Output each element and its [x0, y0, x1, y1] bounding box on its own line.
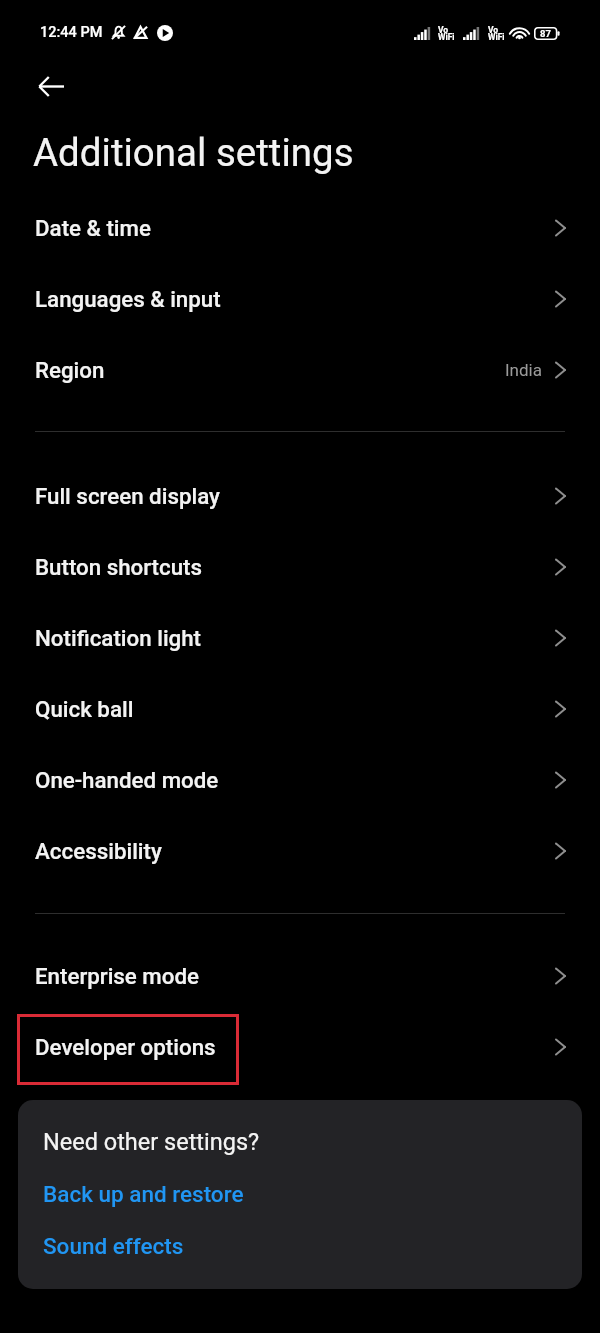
- staticText: Enterprise mode: [35, 963, 200, 989]
- staticText: Full screen display: [35, 483, 220, 509]
- staticText: Additional settings: [33, 130, 354, 175]
- staticText: Developer options: [35, 1034, 216, 1060]
- staticText: Vo: [488, 25, 499, 35]
- staticText: 12:44 PM: [40, 24, 103, 41]
- button[interactable]: Sound effects: [43, 1233, 184, 1259]
- staticText: Notification light: [35, 625, 202, 651]
- button[interactable]: Date & time: [0, 192, 600, 263]
- button[interactable]: One-handed mode: [0, 744, 600, 815]
- staticText: WiFi: [488, 32, 504, 42]
- staticText: WiFi: [438, 32, 454, 42]
- button[interactable]: Languages & input: [0, 263, 600, 334]
- button[interactable]: Enterprise mode: [0, 940, 600, 1011]
- button[interactable]: Developer options: [0, 1011, 600, 1082]
- staticText: Quick ball: [35, 696, 134, 722]
- button[interactable]: Button shortcuts: [0, 531, 600, 602]
- staticText: Button shortcuts: [35, 554, 203, 580]
- button[interactable]: Region: [0, 334, 600, 405]
- staticText: India: [505, 360, 542, 380]
- button[interactable]: Full screen display: [0, 460, 600, 531]
- staticText: Region: [35, 357, 105, 383]
- button[interactable]: Accessibility: [0, 815, 600, 886]
- staticText: Need other settings?: [43, 1128, 260, 1156]
- staticText: 87: [540, 28, 551, 39]
- button[interactable]: Back up and restore: [43, 1181, 244, 1207]
- button[interactable]: Quick ball: [0, 673, 600, 744]
- staticText: Accessibility: [35, 838, 162, 864]
- staticText: One-handed mode: [35, 767, 219, 793]
- staticText: Vo: [438, 25, 449, 35]
- button[interactable]: Notification light: [0, 602, 600, 673]
- staticText: Languages & input: [35, 286, 221, 312]
- staticText: Date & time: [35, 215, 151, 241]
- button[interactable]: Back: [0, 55, 102, 117]
